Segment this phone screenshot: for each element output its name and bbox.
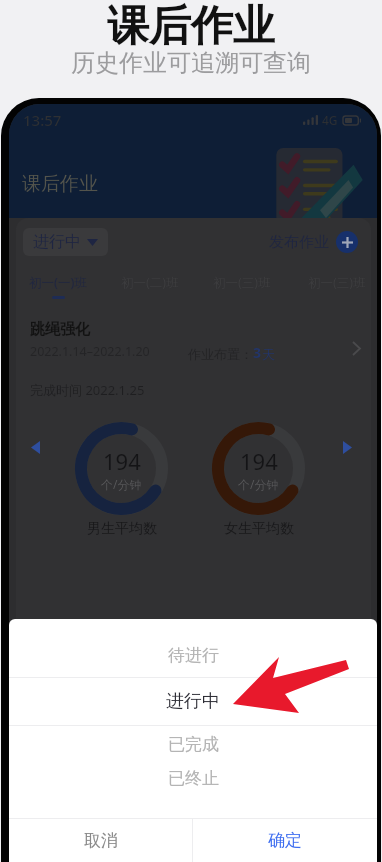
staticText: 历史作业可追溯可查询 <box>71 48 311 78</box>
staticText: 跳绳强化 <box>30 320 90 339</box>
button[interactable]: 进行中 <box>9 688 377 714</box>
staticText: 进行中 <box>166 690 220 713</box>
staticText: 初一(一)班 <box>29 274 87 291</box>
button[interactable]: Open <box>346 338 366 358</box>
button[interactable]: 发布作业 <box>269 228 358 256</box>
button[interactable]: 已完成 <box>9 731 377 757</box>
staticText: 个/分钟 <box>101 476 142 492</box>
staticText: 个/分钟 <box>238 476 279 492</box>
staticText: 女生平均数 <box>224 520 294 538</box>
button[interactable]: 进行中 <box>23 228 108 256</box>
staticText: 男生平均数 <box>87 520 157 538</box>
staticText: 完成时间 2022.1.25 <box>30 381 145 399</box>
staticText: 进行中 <box>33 232 81 252</box>
staticText: 3 <box>253 343 262 362</box>
staticText: 194 <box>240 446 278 476</box>
button[interactable]: Next <box>334 434 360 460</box>
staticText: 确定 <box>268 830 302 851</box>
staticText: 课后作业 <box>107 0 275 46</box>
staticText: 2022.1.14–2022.1.20 <box>30 343 150 360</box>
staticText: 取消 <box>84 830 118 851</box>
staticText: 4G <box>322 112 338 128</box>
staticText: 194 <box>103 446 141 476</box>
button[interactable]: 已终止 <box>9 765 377 791</box>
button[interactable]: Previous <box>22 434 48 460</box>
button[interactable]: 初一(一)班 <box>16 265 100 301</box>
staticText: 课后作业 <box>22 172 98 196</box>
button[interactable]: 跳绳强化 <box>16 312 371 542</box>
staticText: 已终止 <box>168 768 219 789</box>
staticText: 发布作业 <box>269 233 329 252</box>
staticText: 天 <box>262 346 275 362</box>
button[interactable]: 取消 <box>9 819 192 862</box>
staticText: 13:57 <box>23 110 62 130</box>
staticText: 已完成 <box>168 734 219 755</box>
staticText: 待进行 <box>168 645 219 666</box>
button[interactable]: 确定 <box>193 819 377 862</box>
button[interactable]: 待进行 <box>9 642 377 668</box>
staticText: 作业布置： <box>188 346 253 362</box>
